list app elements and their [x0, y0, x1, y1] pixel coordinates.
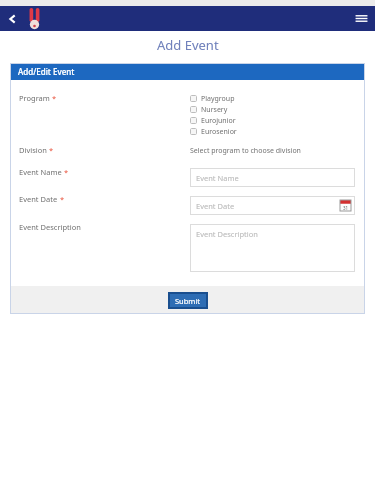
staticText: Add Event	[157, 36, 219, 54]
staticText: Event Name	[19, 167, 62, 177]
staticText: Event Description	[19, 222, 81, 232]
staticText: *	[50, 93, 57, 103]
staticText: Event Description	[196, 229, 258, 239]
staticText: *	[58, 194, 65, 204]
staticText: Playgroup	[201, 94, 235, 104]
staticText: Add/Edit Event	[18, 66, 75, 77]
staticText: Nursery	[201, 105, 228, 115]
button[interactable]: Submit	[168, 292, 208, 309]
button[interactable]: Playgroup	[190, 93, 235, 104]
staticText: Program	[19, 93, 50, 103]
staticText: Division	[19, 145, 47, 155]
staticText: *	[47, 145, 54, 155]
button[interactable]: Home	[28, 6, 41, 31]
staticText: Event Date	[19, 194, 58, 204]
staticText: Event Date	[196, 201, 235, 211]
button[interactable]: Pick date	[340, 200, 351, 211]
staticText: Eurosenior	[201, 127, 237, 137]
staticText: Event Name	[196, 173, 239, 183]
button[interactable]: Eurojunior	[190, 115, 236, 126]
button[interactable]: Event Date	[190, 196, 355, 215]
button[interactable]: Menu	[353, 10, 370, 27]
button[interactable]: Eurosenior	[190, 126, 237, 137]
button[interactable]: Nursery	[190, 104, 228, 115]
staticText: 31	[343, 205, 349, 211]
button[interactable]: Back	[3, 10, 21, 28]
staticText: *	[62, 167, 69, 177]
staticText: Submit	[175, 296, 201, 306]
staticText: Select program to choose division	[190, 146, 301, 156]
staticText: Eurojunior	[201, 116, 236, 126]
button[interactable]: Event Name	[190, 168, 355, 187]
button[interactable]: Event Description	[190, 224, 355, 272]
